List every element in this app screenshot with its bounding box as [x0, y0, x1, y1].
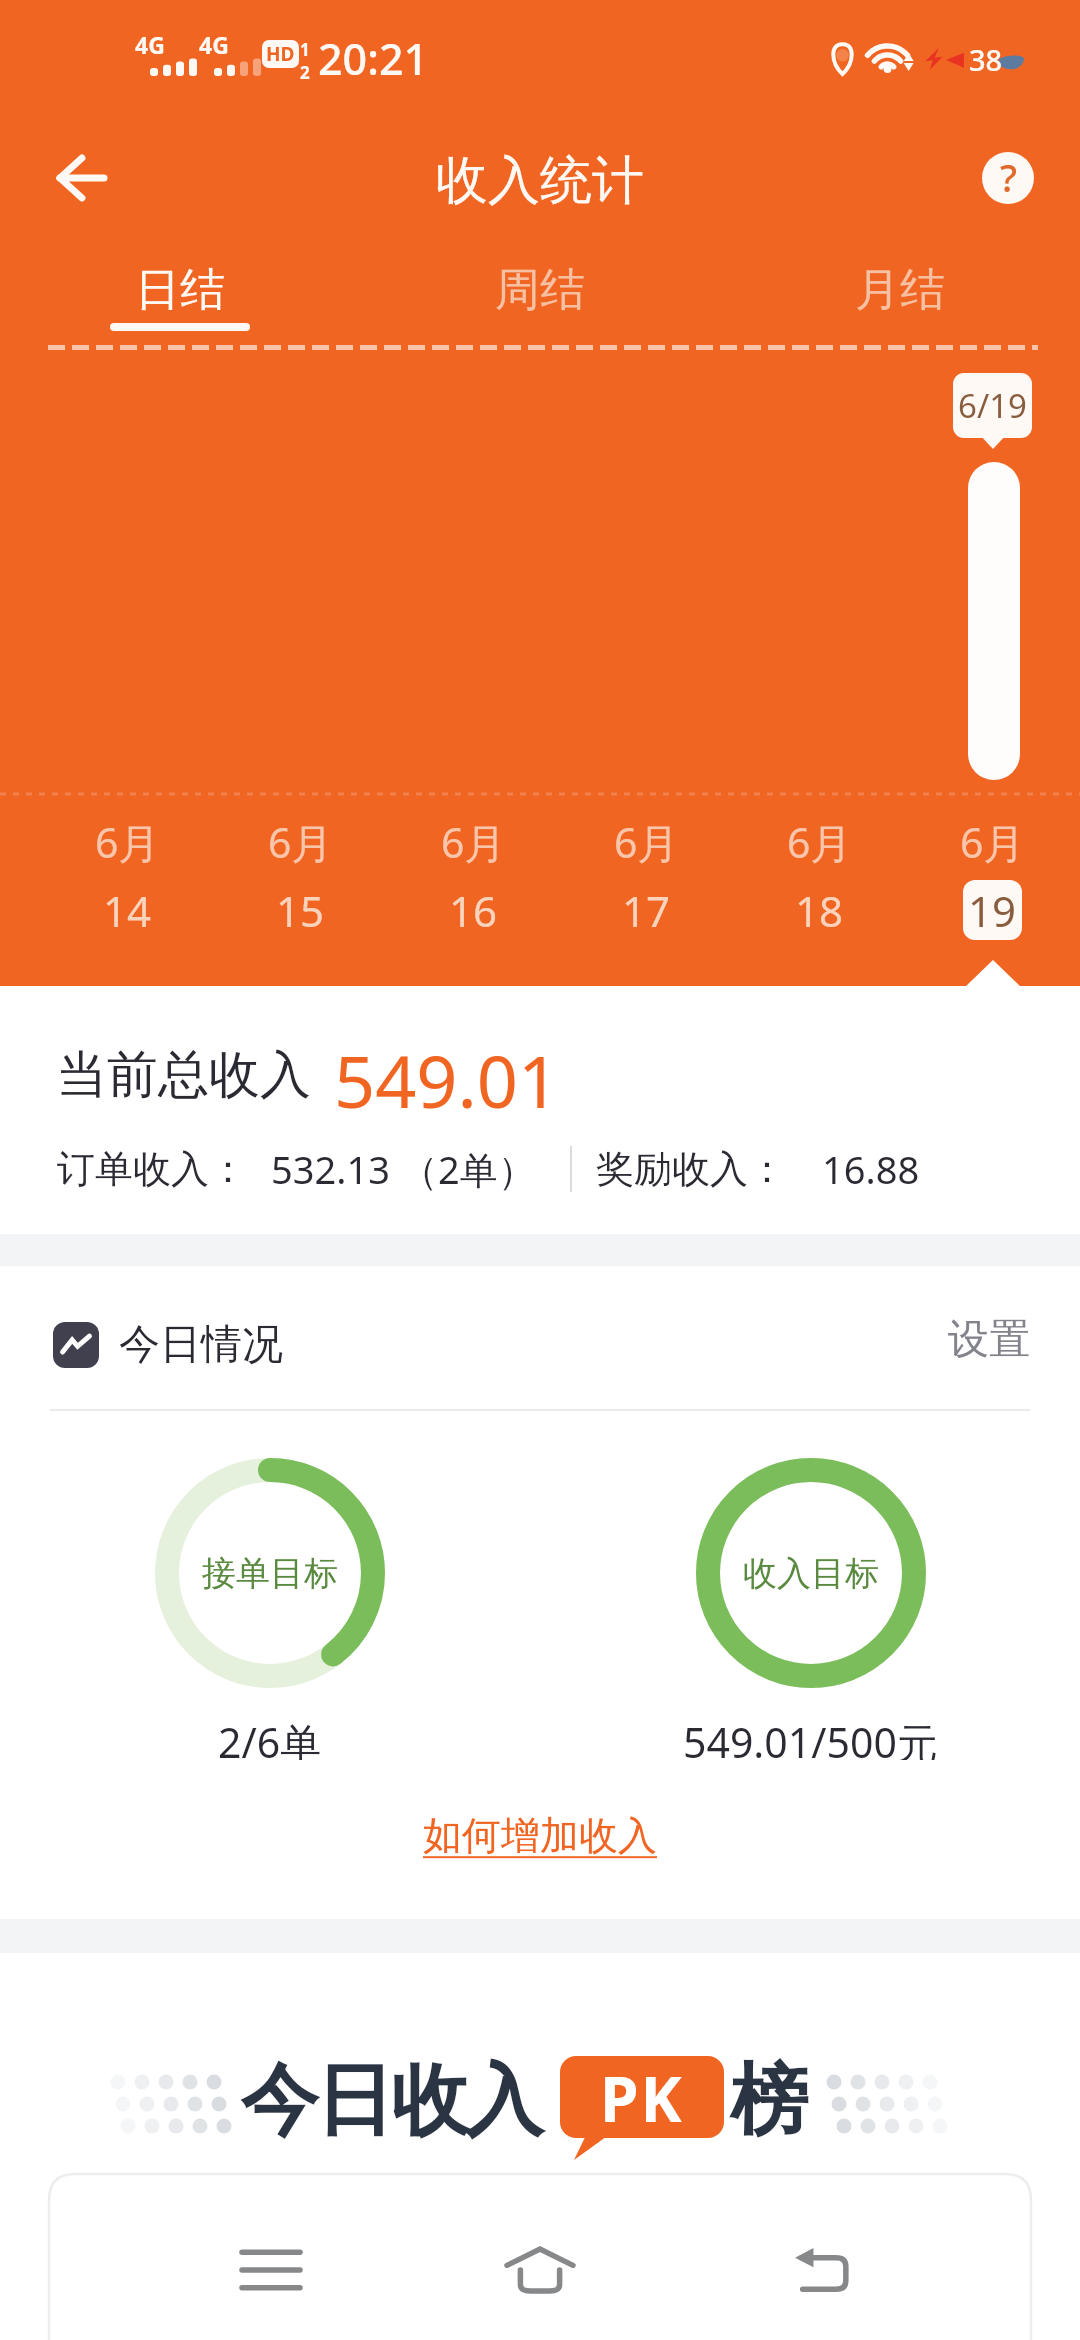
button[interactable]: Help: [982, 152, 1034, 204]
staticText: 周结: [495, 262, 585, 319]
staticText: 接单目标: [202, 1552, 338, 1595]
staticText: 4G: [199, 29, 229, 60]
staticText: PK: [600, 2056, 684, 2138]
staticText: 2/6单: [218, 1714, 322, 1760]
button[interactable]: 6月: [214, 808, 387, 956]
staticText: 14: [103, 882, 152, 939]
staticText: 4G: [135, 29, 165, 60]
button[interactable]: 接单目标: [0, 1440, 540, 1760]
staticText: 1: [300, 38, 310, 61]
staticText: 6月: [95, 814, 160, 870]
staticText: 19: [968, 882, 1017, 939]
staticText: 549.01/500元: [683, 1714, 938, 1760]
staticText: 549.01: [334, 1031, 560, 1129]
staticText: 当前总收入: [56, 1043, 311, 1107]
staticText: 15: [276, 882, 325, 939]
staticText: 17: [622, 882, 671, 939]
staticText: 16: [449, 882, 498, 939]
staticText: 日结: [135, 262, 225, 319]
button[interactable]: Recents: [201, 2200, 341, 2340]
button[interactable]: Home: [470, 2200, 610, 2340]
button[interactable]: 设置: [932, 1309, 1032, 1381]
staticText: 榜: [730, 2052, 808, 2150]
staticText: 如何增加收入: [423, 1811, 657, 1860]
staticText: 奖励收入：: [596, 1145, 786, 1193]
staticText: （2单）: [400, 1143, 536, 1195]
staticText: 月结: [855, 262, 945, 319]
button[interactable]: 日结: [0, 253, 360, 343]
button[interactable]: 6月: [41, 808, 214, 956]
staticText: 收入目标: [743, 1552, 879, 1595]
staticText: HD: [266, 41, 295, 67]
staticText: 6月: [441, 814, 506, 870]
button[interactable]: 6月: [906, 808, 1079, 956]
button[interactable]: 月结: [720, 253, 1080, 343]
staticText: 6月: [268, 814, 333, 870]
staticText: 38: [969, 40, 1003, 79]
button[interactable]: 6月: [733, 808, 906, 956]
button[interactable]: Back: [33, 130, 129, 226]
button[interactable]: 收入目标: [540, 1440, 1080, 1760]
button[interactable]: Back: [751, 2200, 891, 2340]
button[interactable]: 周结: [360, 253, 720, 343]
staticText: 6月: [614, 814, 679, 870]
staticText: 设置: [948, 1314, 1030, 1366]
staticText: 532.13: [271, 1143, 390, 1195]
staticText: ?: [1000, 152, 1017, 203]
staticText: 收入统计: [436, 148, 644, 214]
staticText: 2: [300, 61, 310, 84]
staticText: 6月: [787, 814, 852, 870]
staticText: 订单收入：: [57, 1145, 247, 1193]
staticText: 16.88: [822, 1143, 920, 1195]
staticText: 今日收入: [242, 2052, 542, 2150]
button[interactable]: 如何增加收入: [417, 1805, 663, 1866]
staticText: 6/19: [958, 383, 1027, 428]
staticText: 今日情况: [119, 1319, 283, 1371]
button[interactable]: 6月: [560, 808, 733, 956]
staticText: 18: [795, 882, 844, 939]
button[interactable]: 6月: [387, 808, 560, 956]
staticText: 6月: [960, 814, 1025, 870]
staticText: 20:21: [318, 29, 429, 88]
